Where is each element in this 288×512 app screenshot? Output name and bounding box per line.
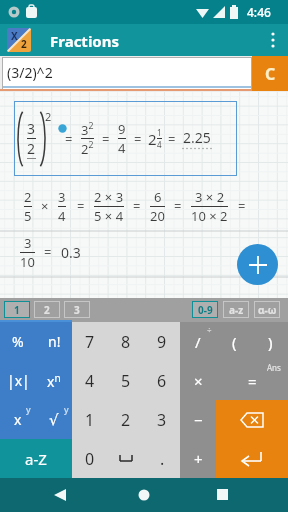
staticText: 2 × 3 — [94, 188, 124, 206]
button[interactable] — [216, 400, 288, 439]
staticText: a-Z — [25, 449, 47, 469]
staticText: a-z — [229, 303, 244, 317]
button[interactable]: % — [0, 322, 36, 361]
button[interactable]: 1 — [72, 400, 108, 439]
button[interactable]: a-z — [223, 301, 249, 318]
staticText: 4 — [58, 207, 66, 225]
staticText: 2 — [121, 409, 131, 431]
staticText: α-ω — [258, 303, 277, 317]
button[interactable]: a-Z — [0, 439, 72, 478]
staticText: 0-9 — [198, 303, 213, 317]
staticText: 4 — [157, 139, 162, 150]
staticText: xn — [47, 371, 61, 391]
button[interactable]: 2 — [24, 184, 246, 228]
button[interactable]: C — [252, 56, 288, 91]
staticText: Ans — [267, 362, 281, 373]
button[interactable]: 3 — [64, 301, 90, 318]
button[interactable]: x — [0, 400, 36, 439]
staticText: 32 — [81, 120, 94, 138]
button[interactable]: (3/2)^2 — [2, 57, 252, 90]
button[interactable] — [108, 439, 144, 478]
button[interactable]: . — [144, 439, 180, 478]
staticText: 8 — [121, 331, 131, 353]
button[interactable]: |x| — [0, 361, 36, 400]
staticText: 1 — [14, 303, 20, 317]
button[interactable]: 2 — [34, 301, 60, 318]
staticText: C — [265, 63, 276, 85]
button[interactable]: ( — [216, 322, 252, 361]
button[interactable]: 9 — [144, 322, 180, 361]
staticText: y — [64, 403, 69, 415]
button[interactable]: 0-9 — [192, 301, 218, 318]
staticText: 2 — [24, 188, 32, 206]
staticText: = — [77, 197, 85, 215]
staticText: 1 — [157, 127, 162, 138]
staticText: / — [195, 332, 201, 352]
staticText: 3 — [24, 234, 32, 252]
button[interactable]: × — [180, 361, 216, 400]
staticText: 3 — [27, 119, 36, 138]
staticText: 3 — [58, 188, 66, 206]
button[interactable]: √ — [36, 400, 72, 439]
staticText: x — [14, 410, 22, 429]
button[interactable]: 0 — [72, 439, 108, 478]
button[interactable]: 5 — [108, 361, 144, 400]
button[interactable]: 2 — [108, 400, 144, 439]
staticText: 2 — [148, 129, 157, 149]
button[interactable]: 8 — [108, 322, 144, 361]
button[interactable]: ) — [252, 322, 288, 361]
staticText: 2 — [21, 37, 27, 51]
button[interactable]: n! — [36, 322, 72, 361]
staticText: = — [44, 243, 52, 261]
staticText: 9 — [118, 120, 126, 138]
staticText: = — [134, 130, 142, 148]
button[interactable]: 4 — [72, 361, 108, 400]
staticText: = — [168, 130, 176, 148]
staticText: 0.3 — [61, 243, 81, 262]
button[interactable]: α-ω — [254, 301, 280, 318]
staticText: ) — [268, 332, 273, 352]
staticText: − — [194, 410, 203, 430]
button[interactable]: − — [180, 400, 216, 439]
staticText: 2 — [27, 139, 36, 158]
button[interactable]: 1 — [4, 301, 30, 318]
staticText: 5 × 4 — [94, 207, 124, 225]
staticText: ( — [232, 332, 237, 352]
staticText: 6 — [154, 188, 162, 206]
button[interactable]: + — [180, 439, 216, 478]
staticText: 4 — [85, 370, 95, 392]
staticText: = — [238, 197, 246, 215]
staticText: y — [26, 403, 31, 415]
staticText: 10 — [20, 253, 35, 271]
button[interactable]: / — [180, 322, 216, 361]
staticText: + — [194, 449, 203, 469]
staticText: % — [12, 332, 24, 351]
button[interactable]: 7 — [72, 322, 108, 361]
staticText: √ — [49, 411, 59, 428]
button[interactable]: xn — [36, 361, 72, 400]
staticText: = — [65, 130, 73, 148]
button[interactable] — [216, 439, 288, 478]
staticText: 3 — [74, 303, 80, 317]
staticText: X — [11, 29, 18, 43]
staticText: 4 — [118, 139, 126, 157]
staticText: 3 — [157, 409, 167, 431]
staticText: Fractions — [50, 31, 120, 51]
button[interactable] — [237, 244, 278, 285]
button[interactable]: 3 — [18, 101, 237, 176]
button[interactable] — [54, 489, 66, 501]
button[interactable]: = — [216, 361, 288, 400]
button[interactable]: 3 — [144, 400, 180, 439]
staticText: 2 — [45, 109, 52, 124]
staticText: ÷ — [207, 324, 212, 335]
staticText: 4:46 — [247, 4, 271, 20]
staticText: . — [160, 448, 165, 470]
staticText: 9 — [157, 331, 167, 353]
button[interactable] — [138, 489, 150, 501]
button[interactable] — [268, 32, 278, 48]
button[interactable]: 6 — [144, 361, 180, 400]
staticText: 3 × 2 — [195, 188, 225, 206]
staticText: = — [248, 371, 257, 391]
button[interactable]: 3 — [20, 230, 81, 274]
